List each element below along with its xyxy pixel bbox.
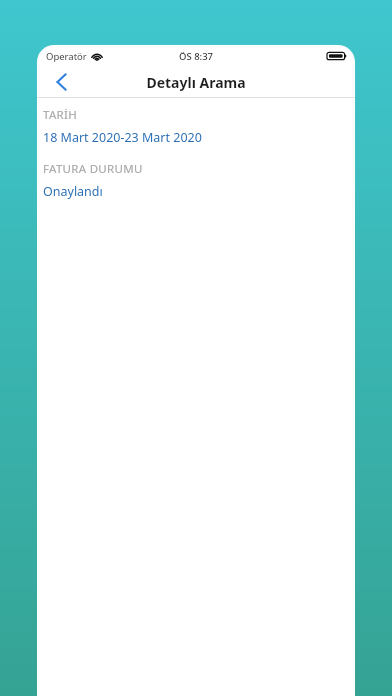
button[interactable]: 18 Mart 2020-23 Mart 2020 xyxy=(37,128,355,147)
button[interactable]: Onaylandı xyxy=(37,182,355,201)
staticText: TARİH xyxy=(43,107,78,123)
staticText: Detaylı Arama xyxy=(146,73,246,92)
staticText: ÖS 8:37 xyxy=(179,50,214,63)
staticText: FATURA DURUMU xyxy=(43,161,143,177)
staticText: 18 Mart 2020-23 Mart 2020 xyxy=(43,129,202,146)
button[interactable]: Back xyxy=(46,68,76,96)
staticText: Operatör xyxy=(46,50,87,63)
staticText: Onaylandı xyxy=(43,183,103,200)
